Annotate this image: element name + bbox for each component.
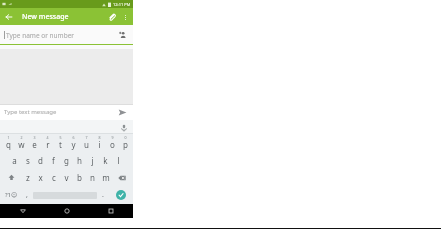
button[interactable]: d	[34, 152, 47, 169]
staticText: y	[71, 139, 76, 150]
button[interactable]: Backspace	[112, 169, 132, 186]
button[interactable]: .	[97, 188, 109, 202]
button[interactable]: g	[60, 152, 73, 169]
staticText: b	[77, 172, 82, 183]
button[interactable]: n	[86, 169, 99, 186]
staticText: s	[26, 155, 30, 166]
staticText: f	[52, 155, 55, 166]
staticText: 7	[85, 135, 88, 140]
staticText: h	[77, 155, 82, 166]
button[interactable]: j	[86, 152, 99, 169]
button[interactable]: Back	[0, 204, 45, 218]
button[interactable]: x	[34, 169, 47, 186]
staticText: 6	[72, 135, 75, 140]
staticText: t	[59, 139, 62, 150]
staticText: z	[26, 172, 30, 183]
staticText: 0	[124, 135, 127, 140]
button[interactable]: 6	[67, 134, 80, 152]
button[interactable]: ?1☺	[1, 188, 21, 202]
button[interactable]: Type name or number	[0, 25, 133, 45]
button[interactable]: More options	[119, 11, 131, 23]
staticText: o	[110, 139, 115, 150]
button[interactable]: Recents	[89, 204, 133, 218]
button[interactable]: 3	[28, 134, 41, 152]
staticText: 3	[33, 135, 36, 140]
button[interactable]: Shift	[1, 169, 21, 186]
button[interactable]: Back	[3, 11, 15, 23]
button[interactable]: s	[21, 152, 34, 169]
button[interactable]: k	[99, 152, 112, 169]
staticText: 1	[7, 135, 10, 140]
staticText: l	[117, 155, 120, 166]
staticText: .	[102, 190, 104, 200]
staticText: 8	[98, 135, 101, 140]
staticText: ?1☺	[5, 191, 18, 199]
button[interactable]: Enter	[116, 190, 126, 200]
staticText: g	[64, 155, 69, 166]
staticText: m	[102, 172, 110, 183]
staticText: a	[12, 155, 17, 166]
button[interactable]: ,	[21, 188, 33, 202]
staticText: 2	[20, 135, 23, 140]
staticText: ,	[26, 190, 28, 200]
staticText: New message	[22, 12, 69, 22]
button[interactable]: z	[21, 169, 34, 186]
staticText: j	[91, 155, 94, 166]
staticText: v	[64, 172, 69, 183]
button[interactable]: 0	[119, 134, 132, 152]
button[interactable]: 9	[106, 134, 119, 152]
button[interactable]: f	[47, 152, 60, 169]
button[interactable]: 7	[80, 134, 93, 152]
button[interactable]: h	[73, 152, 86, 169]
button[interactable]: Home	[45, 204, 89, 218]
staticText: Type name or number	[6, 31, 117, 40]
button[interactable]: 5	[54, 134, 67, 152]
staticText: r	[46, 139, 50, 150]
button[interactable]: v	[60, 169, 73, 186]
button[interactable]: 8	[93, 134, 106, 152]
button[interactable]: Add contact	[117, 29, 129, 41]
staticText: x	[38, 172, 43, 183]
button[interactable]: m	[99, 169, 112, 186]
staticText: 4	[46, 135, 49, 140]
staticText: d	[38, 155, 43, 166]
staticText: u	[84, 139, 89, 150]
staticText: p	[123, 139, 128, 150]
staticText: c	[52, 172, 56, 183]
staticText: e	[32, 139, 37, 150]
button[interactable]: b	[73, 169, 86, 186]
staticText: 12:11 PM	[113, 2, 131, 7]
staticText: 9	[111, 135, 114, 140]
staticText: n	[90, 172, 95, 183]
staticText: w	[18, 139, 25, 150]
button[interactable]: a	[8, 152, 21, 169]
button[interactable]: Attach	[105, 10, 119, 24]
button[interactable]: Voice input	[118, 122, 129, 133]
button[interactable]: Send	[116, 106, 129, 119]
staticText: 5	[59, 135, 62, 140]
staticText: i	[98, 139, 101, 150]
button[interactable]: 1	[1, 134, 15, 152]
button[interactable]: 2	[15, 134, 28, 152]
button[interactable]: 4	[41, 134, 54, 152]
button[interactable]: c	[47, 169, 60, 186]
staticText: q	[6, 139, 11, 150]
button[interactable]: Type text message	[4, 108, 116, 116]
button[interactable]: l	[112, 152, 125, 169]
staticText: k	[103, 155, 108, 166]
